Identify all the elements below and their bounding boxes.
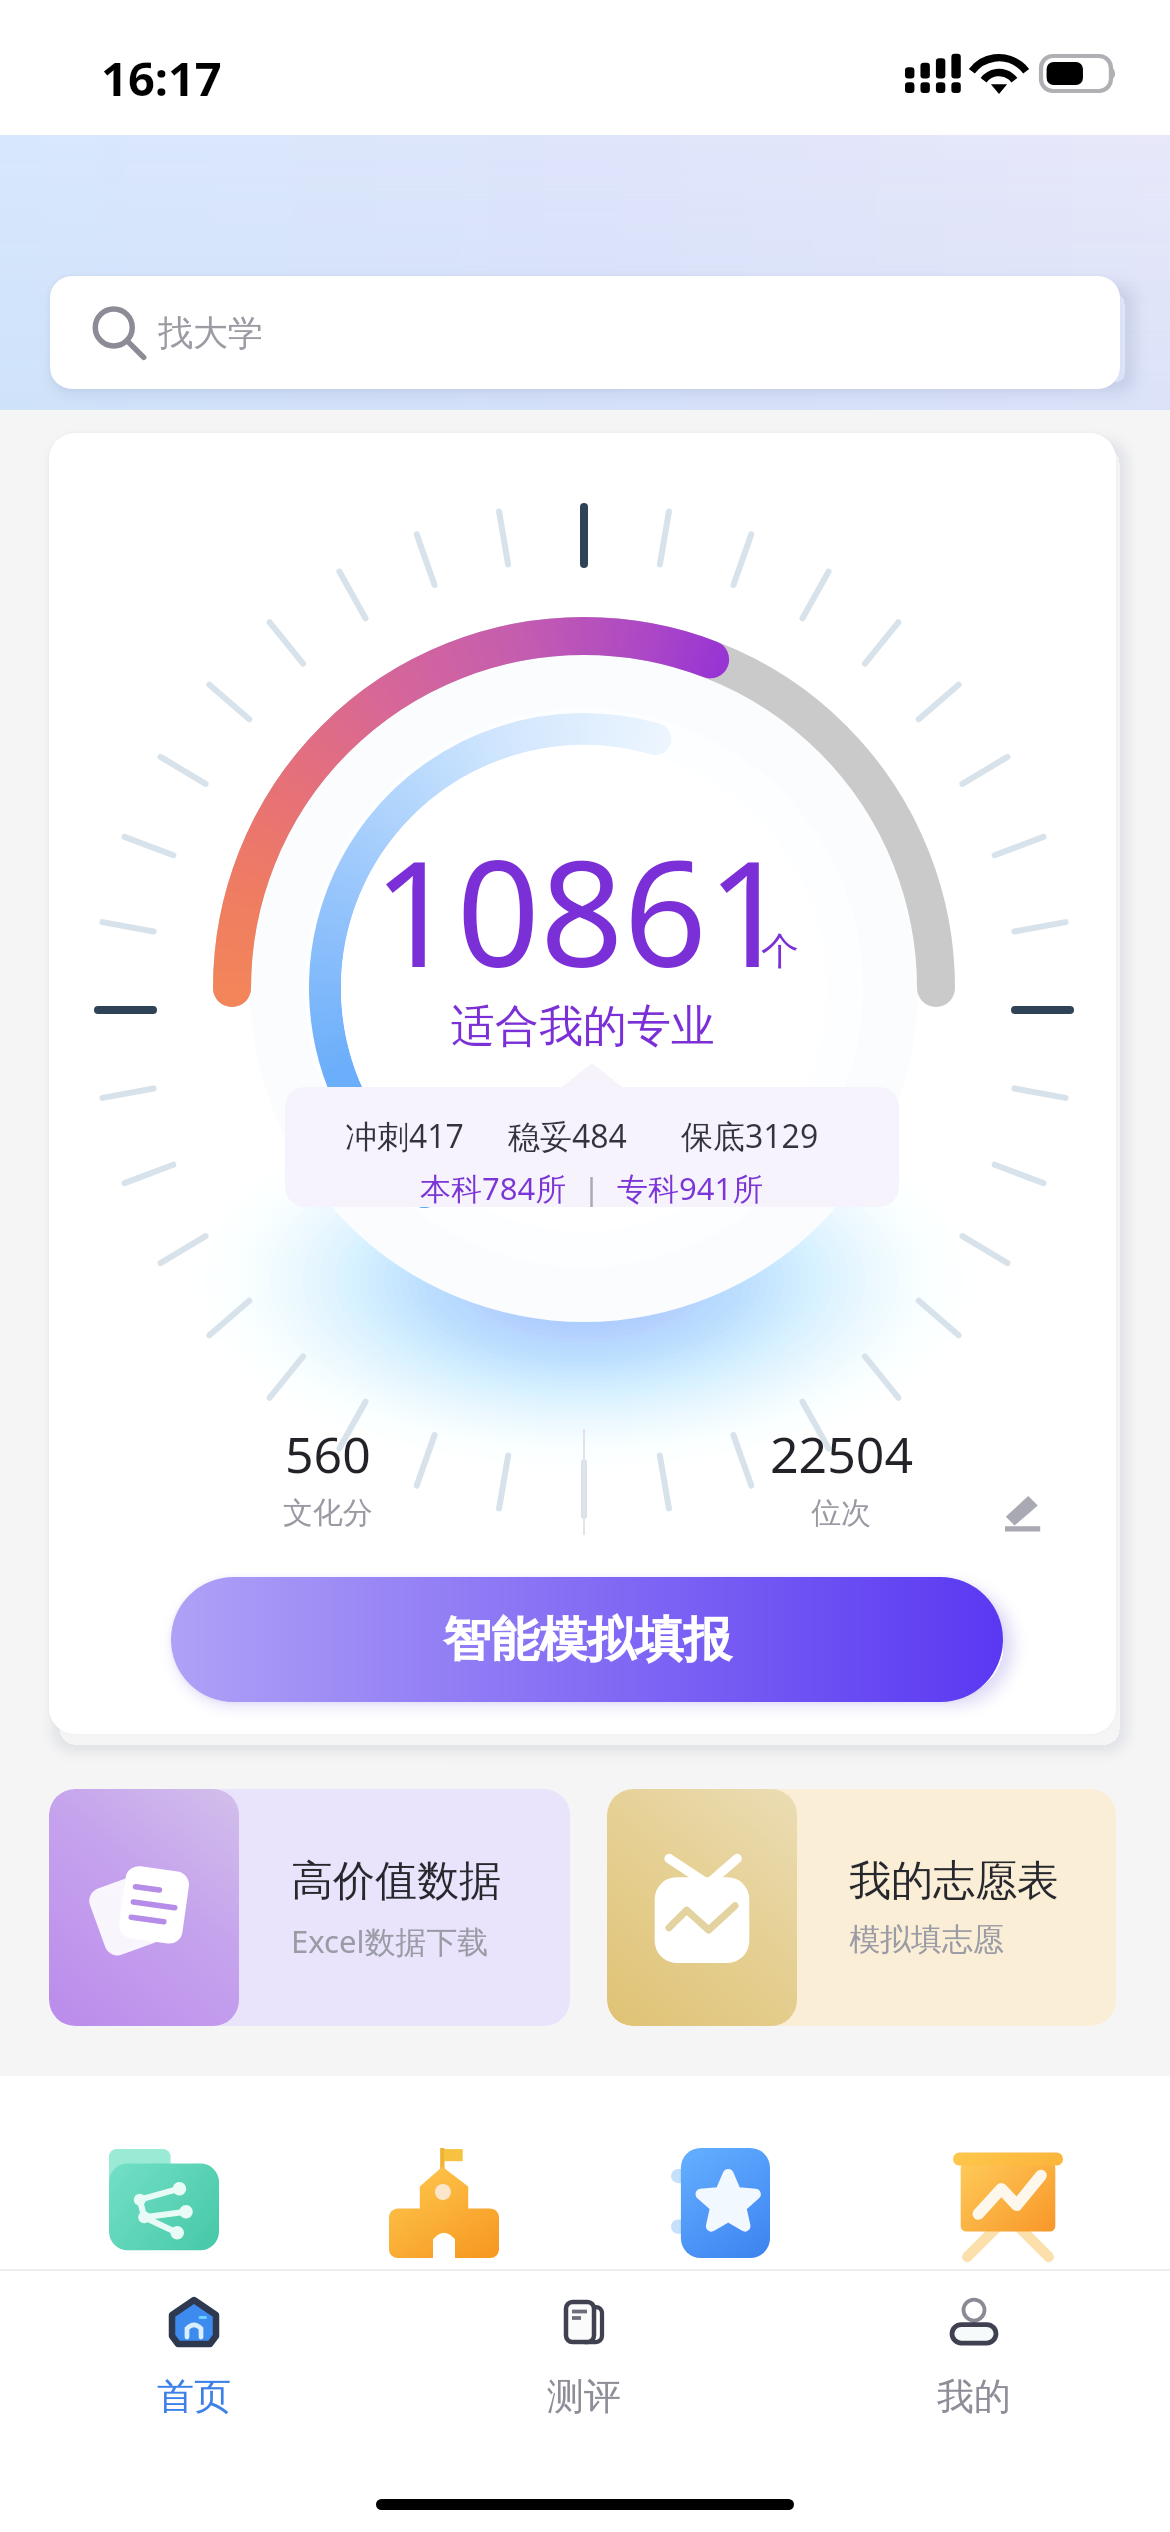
button[interactable]: 测评 (494, 2297, 674, 2457)
staticText: 智能模拟填报 (443, 1610, 731, 1670)
button[interactable]: 首页 (104, 2297, 284, 2457)
staticText: 22504 (770, 1420, 913, 1488)
staticText: 模拟填志愿 (849, 1920, 1004, 1959)
staticText: 16:17 (101, 46, 222, 110)
button[interactable]: 高价值数据 (49, 1789, 570, 2026)
staticText: 冲刺417 (345, 1114, 464, 1158)
staticText: 个 (761, 927, 799, 975)
staticText: 专科941所 (617, 1167, 764, 1209)
staticText: 我的志愿表 (849, 1855, 1059, 1908)
button[interactable]: 我的志愿表 (607, 1789, 1116, 2026)
staticText: 高价值数据 (291, 1855, 501, 1908)
staticText: Excel数据下载 (291, 1920, 489, 1962)
staticText: 本科784所 (420, 1167, 567, 1209)
staticText: 测评 (547, 2373, 621, 2420)
staticText: 找大学 (158, 311, 263, 355)
staticText: 首页 (157, 2373, 231, 2420)
button[interactable]: 智能模拟填报 (171, 1577, 1003, 1702)
staticText: 10861 (373, 811, 791, 1010)
staticText: | (567, 1167, 617, 1209)
button[interactable]: Edit score (1001, 1492, 1041, 1532)
button[interactable]: 找大学 (50, 276, 1120, 389)
staticText: 位次 (811, 1494, 871, 1532)
button[interactable]: Reports (953, 2148, 1063, 2258)
button[interactable]: Schools (389, 2148, 499, 2258)
staticText: 文化分 (283, 1494, 373, 1532)
staticText: 560 (285, 1420, 371, 1488)
staticText: 保底3129 (681, 1114, 819, 1158)
staticText: 稳妥484 (508, 1114, 627, 1158)
staticText: 适合我的专业 (451, 999, 715, 1054)
button[interactable]: Data (109, 2148, 219, 2258)
button[interactable]: Favourites (671, 2148, 781, 2258)
button[interactable]: 我的 (884, 2297, 1064, 2457)
staticText: 我的 (937, 2373, 1011, 2420)
